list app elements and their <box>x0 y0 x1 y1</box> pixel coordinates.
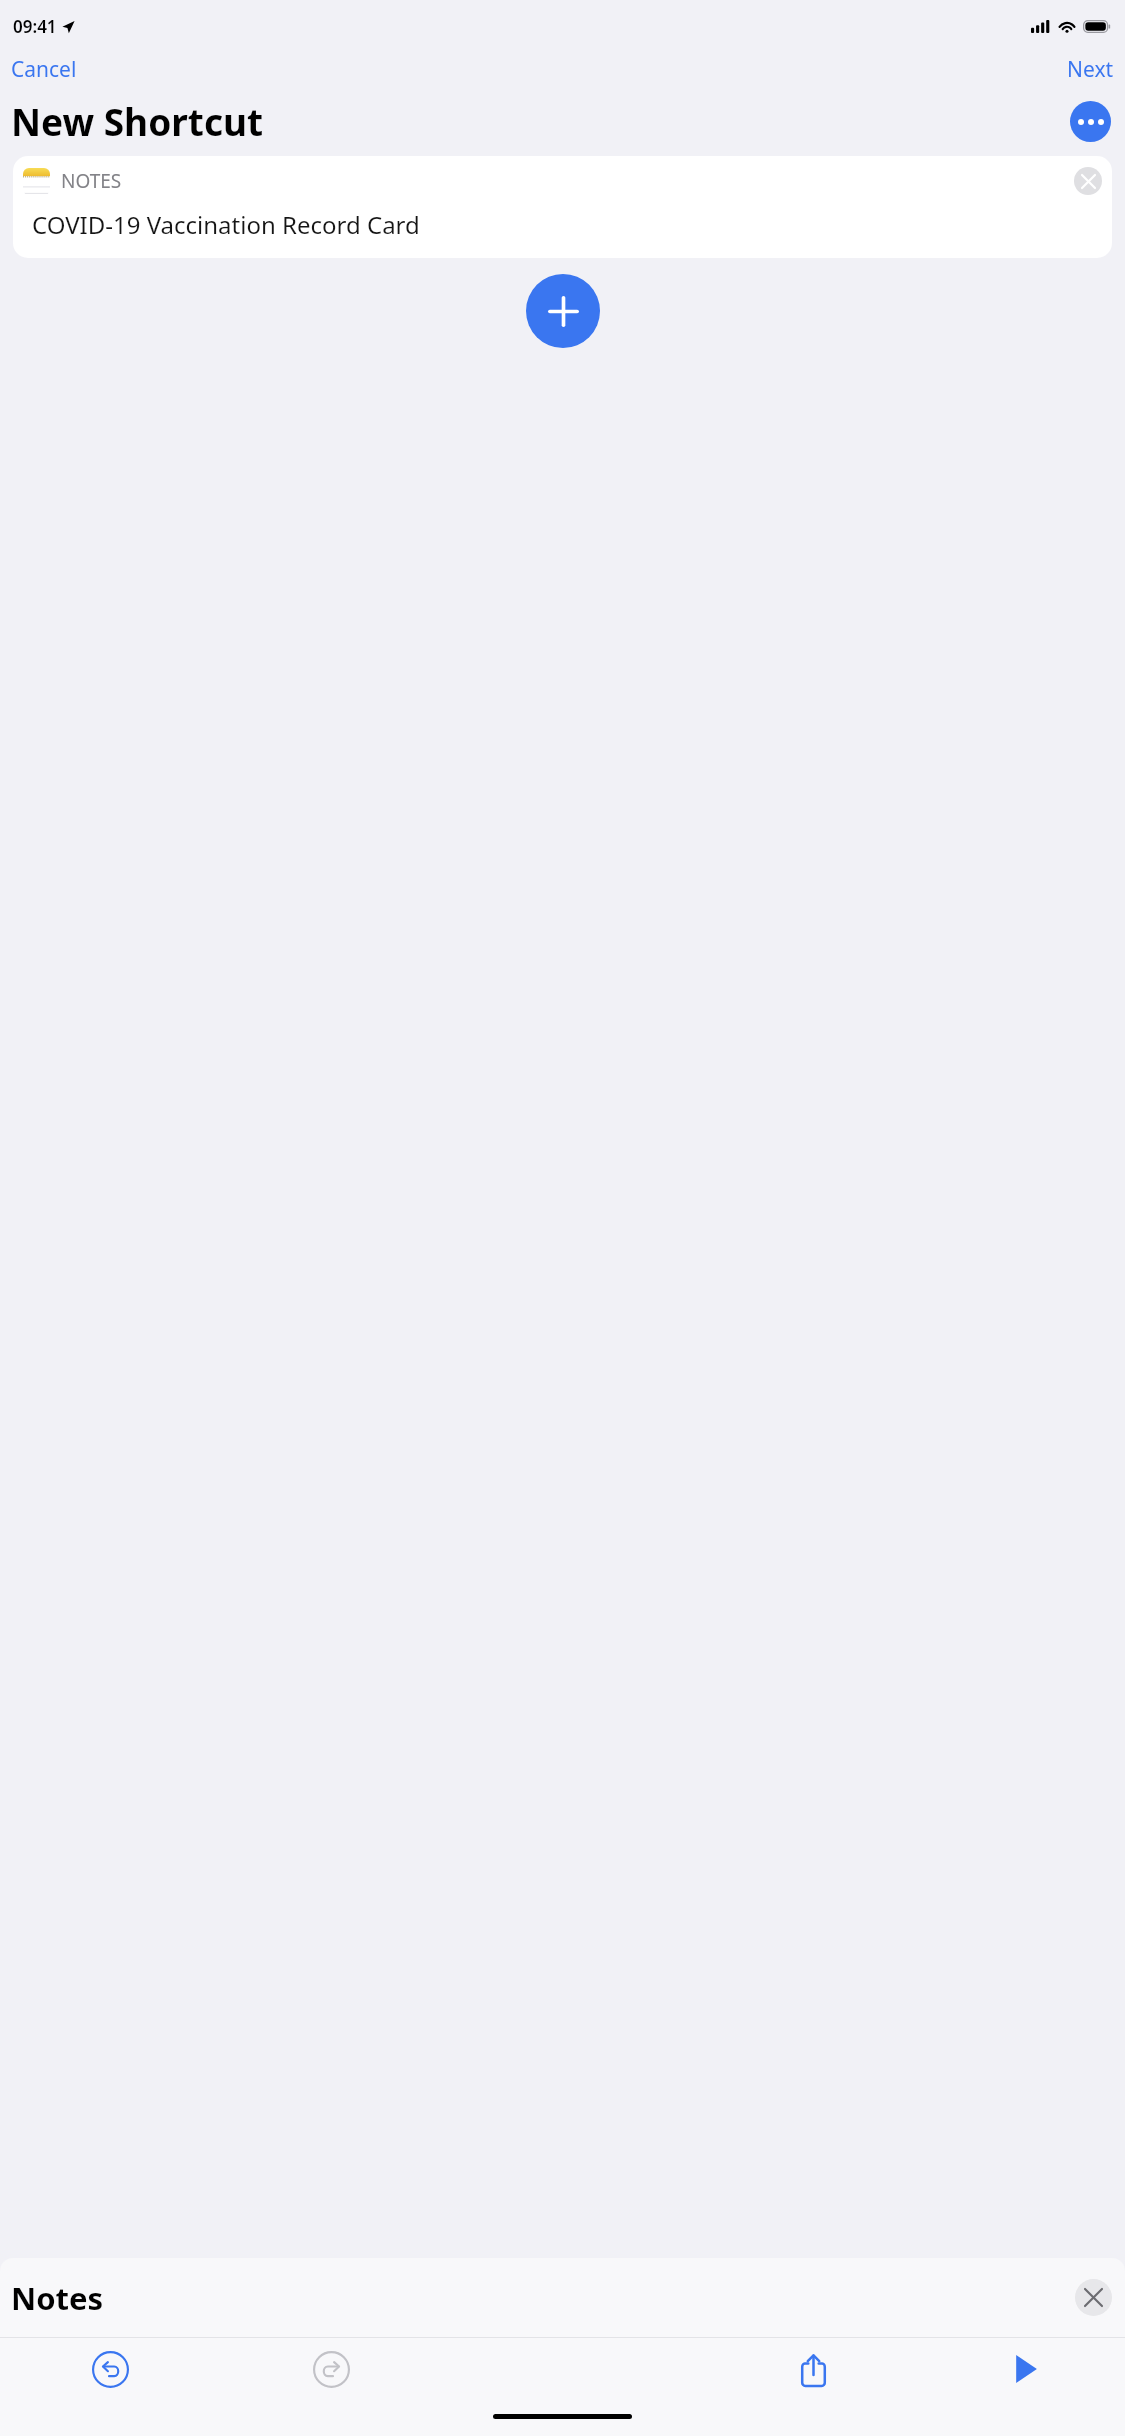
staticText: Next <box>1067 55 1114 84</box>
staticText: 09:41 <box>13 15 57 38</box>
staticText: COVID-19 Vaccination Record Card <box>32 208 420 241</box>
button[interactable]: Remove action <box>1074 167 1102 195</box>
staticText: Cancel <box>11 55 77 84</box>
staticText: New Shortcut <box>11 96 264 146</box>
staticText: NOTES <box>61 168 122 194</box>
button[interactable]: NOTES <box>13 156 1112 258</box>
button[interactable]: More options <box>1070 101 1111 142</box>
button[interactable]: Undo <box>0 2338 221 2400</box>
button[interactable]: Redo <box>221 2338 442 2400</box>
button[interactable]: Close <box>1075 2279 1112 2316</box>
button[interactable]: Next <box>1056 47 1125 92</box>
button[interactable]: Run <box>924 2338 1125 2400</box>
button[interactable]: Share <box>703 2338 924 2400</box>
button[interactable]: Add action <box>526 274 600 348</box>
staticText: Notes <box>11 2277 104 2319</box>
button[interactable]: Cancel <box>0 47 88 92</box>
